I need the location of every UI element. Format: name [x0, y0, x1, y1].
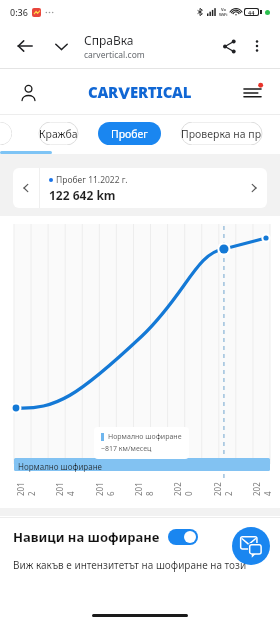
button[interactable]: Проверка на пр: [168, 122, 275, 145]
button[interactable]: More options: [244, 33, 270, 59]
staticText: 0:36: [10, 6, 28, 18]
button[interactable]: Back: [10, 31, 40, 61]
staticText: 44: [248, 9, 255, 15]
button[interactable]: Previous: [13, 168, 39, 208]
button[interactable]: Next: [241, 168, 267, 208]
staticText: 2012: [15, 480, 37, 496]
staticText: 2016: [94, 480, 116, 496]
staticText: 2020: [172, 480, 194, 496]
button[interactable]: Chat support: [232, 527, 270, 565]
staticText: Пробег: [111, 127, 148, 141]
button[interactable]: Share: [214, 31, 244, 61]
staticText: Виж какъв е интензитетът на шофиране на …: [13, 558, 247, 572]
staticText: 2014: [54, 480, 76, 496]
staticText: Навици на шофиране: [13, 528, 160, 546]
staticText: Проверка на пр: [181, 127, 262, 141]
staticText: ~817 км/месец: [101, 444, 152, 454]
staticText: Нормално шофиране: [108, 432, 182, 442]
button[interactable]: [0, 122, 12, 145]
staticText: СпраВка: [84, 32, 134, 48]
staticText: 122 642 km: [49, 187, 116, 203]
staticText: Кражба: [39, 127, 78, 141]
button[interactable]: Expand: [46, 31, 76, 61]
staticText: 2022: [212, 480, 234, 496]
staticText: carvertical.com: [84, 49, 145, 61]
staticText: CAR: [88, 82, 118, 102]
staticText: ERTICAL: [130, 82, 192, 102]
staticText: Пробег 11.2022 г.: [56, 174, 128, 186]
staticText: Vo: [221, 7, 227, 12]
button[interactable]: Toggle driving habits: [168, 529, 198, 545]
button[interactable]: Account: [14, 78, 42, 106]
staticText: Нормално шофиране: [18, 461, 102, 472]
staticText: 2024: [251, 480, 273, 496]
button[interactable]: Кражба: [26, 122, 91, 145]
button[interactable]: Menu: [238, 78, 266, 106]
staticText: 2018: [133, 480, 155, 496]
staticText: WiFi: [219, 12, 228, 17]
button[interactable]: Пробег: [98, 122, 161, 145]
